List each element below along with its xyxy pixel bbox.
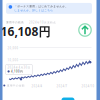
staticText: 2024年4月30日: [7, 66, 30, 69]
button[interactable]: 「ボーナス運用」はじめてみませんか。: [6, 3, 92, 14]
staticText: 運用中の残高: [6, 21, 24, 24]
button[interactable]: Increase: [79, 24, 91, 36]
staticText: しませんか。詳しくはこちら: [14, 9, 53, 12]
staticText: 16,108円: [0, 23, 50, 39]
staticText: 20,000: [7, 46, 18, 50]
staticText: 2024/10: [81, 84, 94, 88]
staticText: 4,100円: [11, 70, 23, 73]
staticText: 2024年10月末時点: [29, 21, 56, 24]
staticText: 2024/7: [56, 84, 67, 88]
staticText: 10,000: [7, 58, 18, 62]
staticText: 「ボーナス運用」はじめてみませんか。: [14, 5, 68, 8]
staticText: 2024/4: [31, 84, 42, 88]
staticText: 運用中の金額: [7, 84, 25, 87]
button[interactable]: Action: [61, 97, 74, 100]
